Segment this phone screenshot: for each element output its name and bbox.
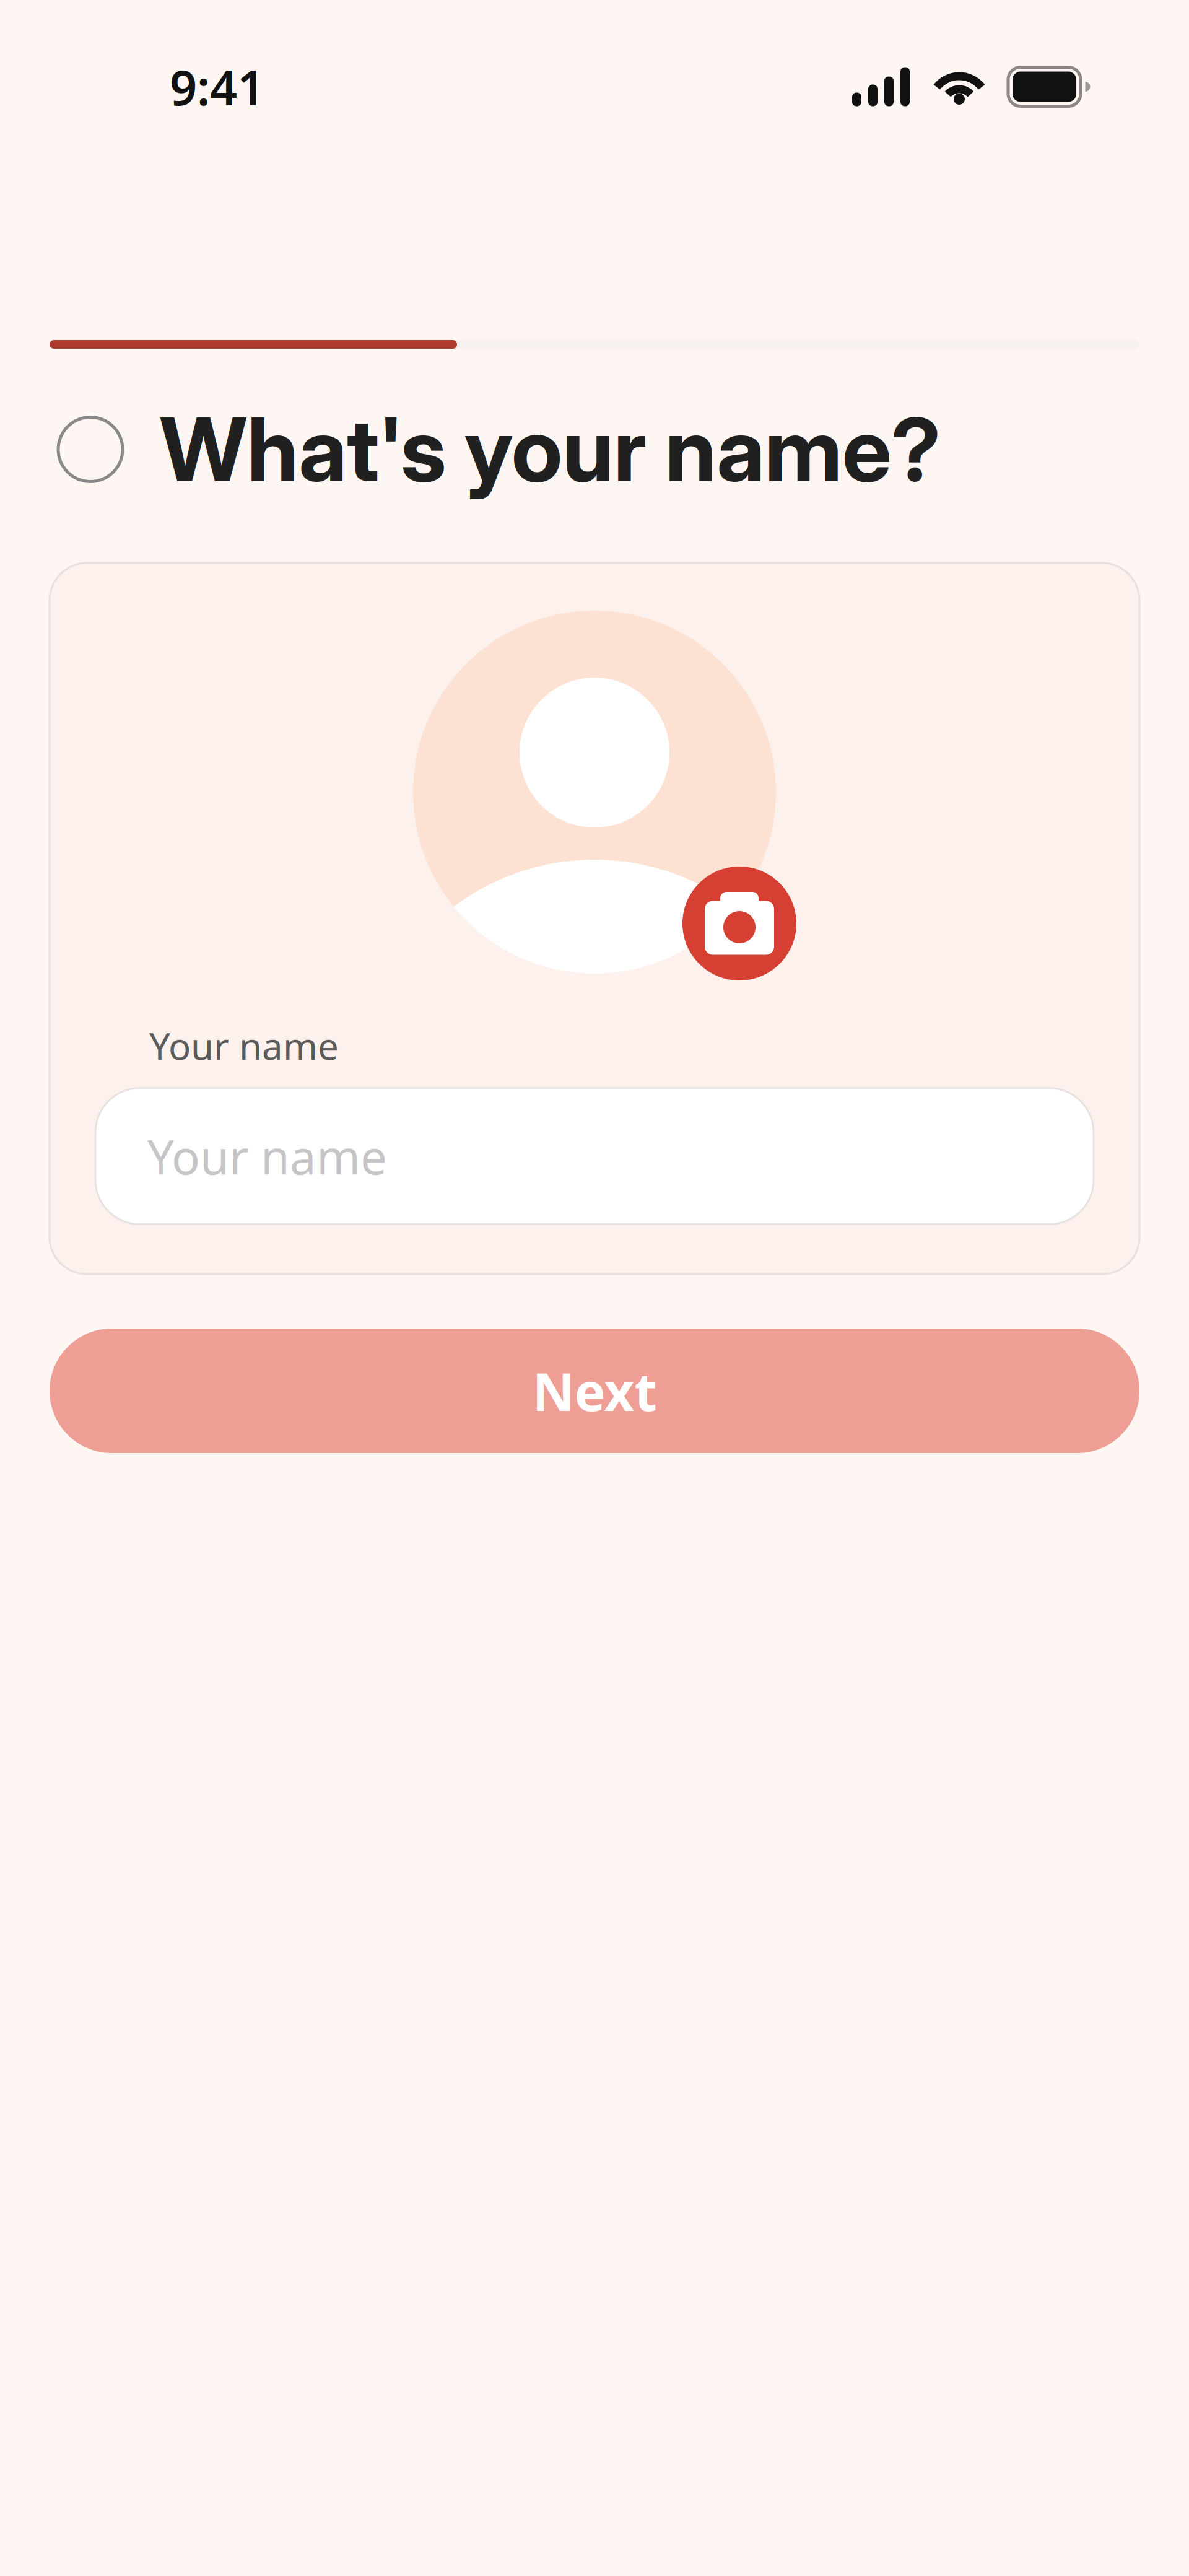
staticText: Your name (147, 1125, 387, 1187)
staticText: 9:41 (170, 55, 264, 119)
staticText: Your name (149, 1021, 339, 1070)
staticText: Next (532, 1356, 657, 1425)
button[interactable]: Your name text field (95, 1088, 1094, 1224)
button[interactable]: Add photo (682, 867, 796, 980)
staticText: What's your name? (160, 396, 941, 502)
button[interactable]: Next (50, 1329, 1139, 1453)
